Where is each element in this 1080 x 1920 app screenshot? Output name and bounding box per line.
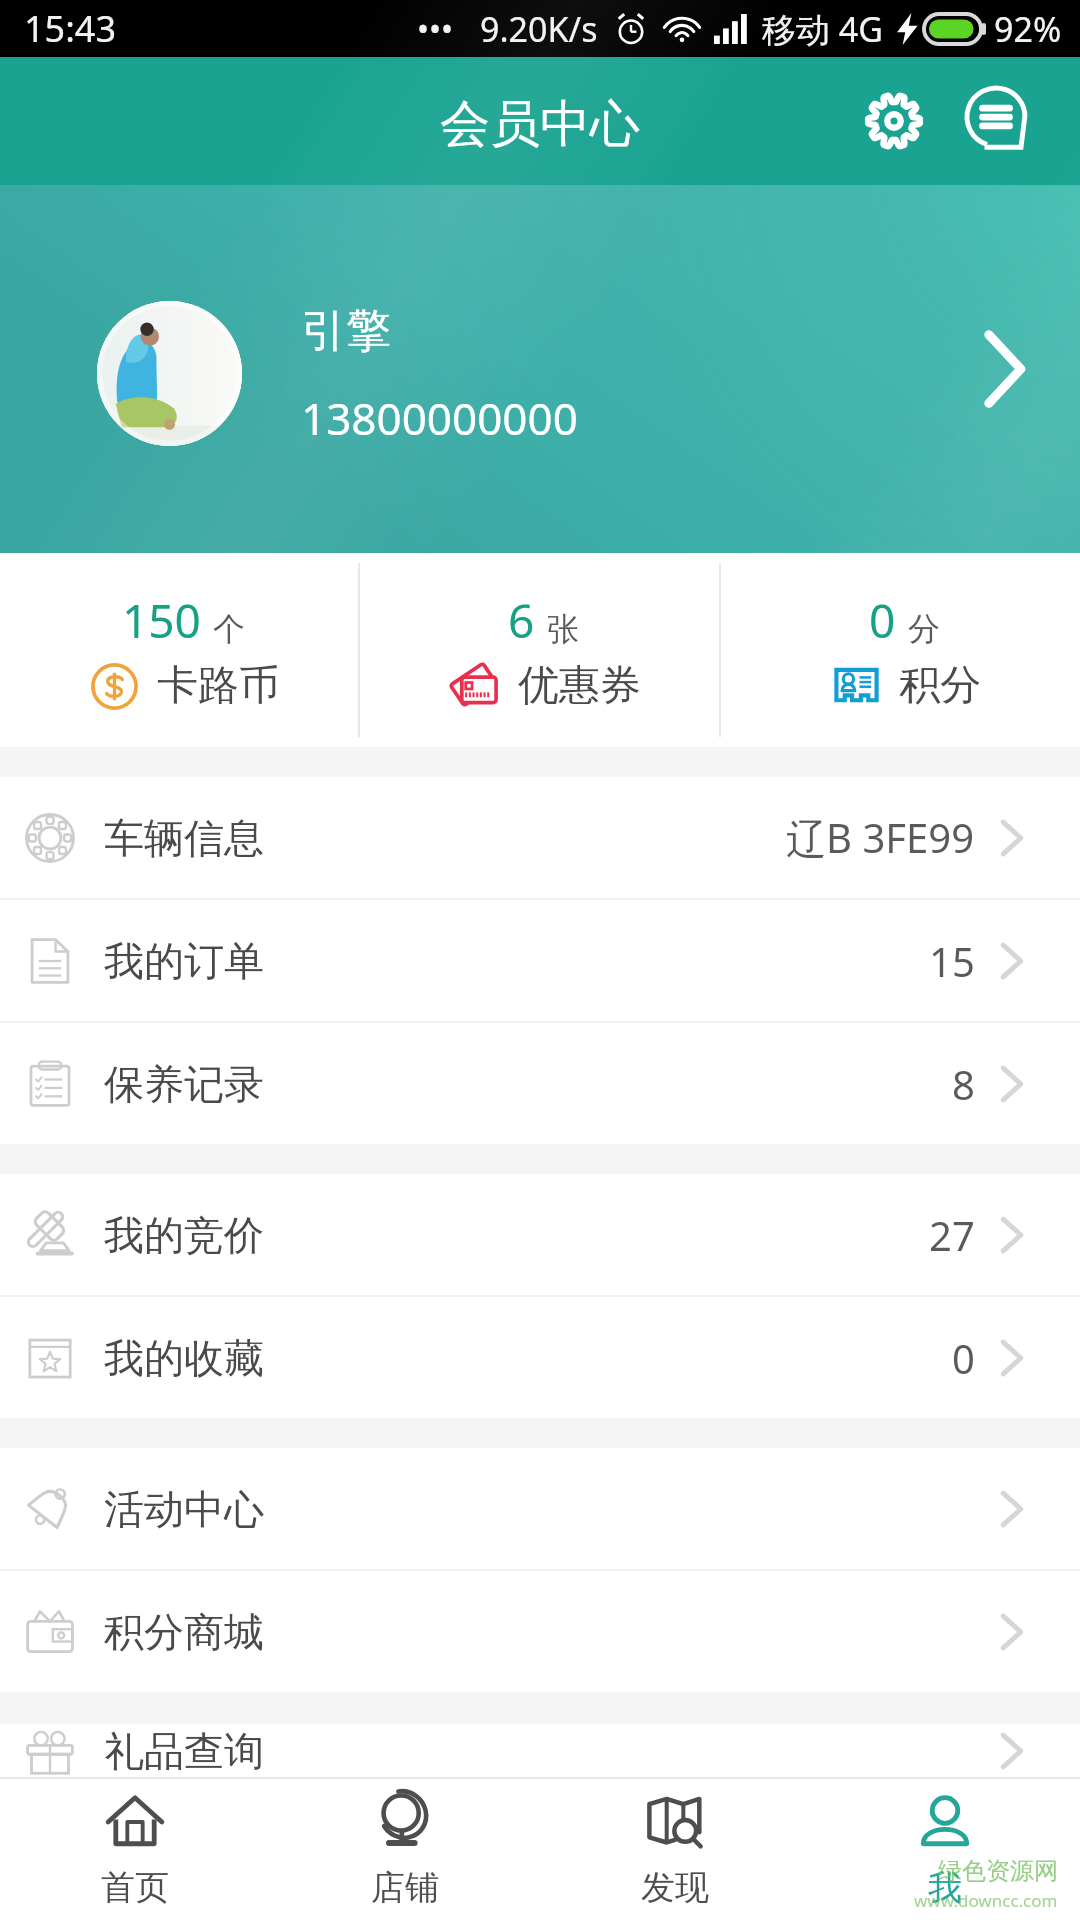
button[interactable]: Settings xyxy=(846,73,942,169)
button[interactable]: 首页 xyxy=(0,1779,270,1920)
button[interactable]: 积分商城 xyxy=(0,1571,1080,1692)
staticText: 卡路币 xyxy=(157,660,280,712)
staticText: 个 xyxy=(213,609,245,649)
button[interactable]: 我的收藏 xyxy=(0,1297,1080,1418)
staticText: 15:43 xyxy=(24,4,117,53)
staticText: 13800000000 xyxy=(301,388,578,448)
staticText: 15 xyxy=(929,934,975,988)
button[interactable]: Messages xyxy=(950,73,1046,169)
button[interactable]: 6 xyxy=(360,553,719,747)
staticText: 张 xyxy=(547,609,579,649)
button[interactable]: 发现 xyxy=(540,1779,810,1920)
staticText: 9.20K/s xyxy=(480,6,598,52)
staticText: 绿色资源网 xyxy=(938,1856,1058,1886)
button[interactable]: 车辆信息 xyxy=(0,777,1080,898)
button[interactable]: 店铺 xyxy=(270,1779,540,1920)
staticText: 移动 4G xyxy=(762,6,884,52)
staticText: 0 xyxy=(869,589,896,652)
staticText: 礼品查询 xyxy=(104,1726,264,1776)
staticText: 8 xyxy=(952,1057,975,1111)
staticText: 会员中心 xyxy=(440,93,640,156)
staticText: 优惠券 xyxy=(518,660,641,712)
staticText: 150 xyxy=(122,589,201,652)
staticText: 我的订单 xyxy=(104,936,264,986)
button[interactable]: 我 xyxy=(810,1779,1080,1920)
button[interactable]: 引擎 xyxy=(0,185,1080,553)
button[interactable]: 礼品查询 xyxy=(0,1724,1080,1777)
staticText: 我的收藏 xyxy=(104,1333,264,1383)
staticText: 27 xyxy=(929,1208,975,1262)
button[interactable]: 我的竞价 xyxy=(0,1174,1080,1295)
staticText: 积分 xyxy=(899,660,981,712)
staticText: 活动中心 xyxy=(104,1484,264,1534)
button[interactable]: 保养记录 xyxy=(0,1023,1080,1144)
staticText: ••• xyxy=(417,7,454,51)
staticText: 保养记录 xyxy=(104,1059,264,1109)
staticText: 引擎 xyxy=(301,303,391,360)
button[interactable]: 0 xyxy=(721,553,1080,747)
button[interactable]: 我的订单 xyxy=(0,900,1080,1021)
staticText: 分 xyxy=(908,609,940,649)
button[interactable]: 活动中心 xyxy=(0,1448,1080,1569)
staticText: 92% xyxy=(994,6,1062,52)
staticText: 车辆信息 xyxy=(104,813,264,863)
staticText: 首页 xyxy=(101,1866,169,1909)
staticText: 6 xyxy=(508,589,535,652)
staticText: 发现 xyxy=(641,1866,709,1909)
staticText: 店铺 xyxy=(371,1866,439,1909)
staticText: www.downcc.com xyxy=(914,1889,1058,1912)
staticText: 我的竞价 xyxy=(104,1210,264,1260)
staticText: 辽B 3FE99 xyxy=(786,810,975,865)
staticText: 我 xyxy=(928,1866,962,1909)
button[interactable]: 150 xyxy=(0,553,358,747)
staticText: 0 xyxy=(952,1331,975,1385)
staticText: 积分商城 xyxy=(104,1607,264,1657)
